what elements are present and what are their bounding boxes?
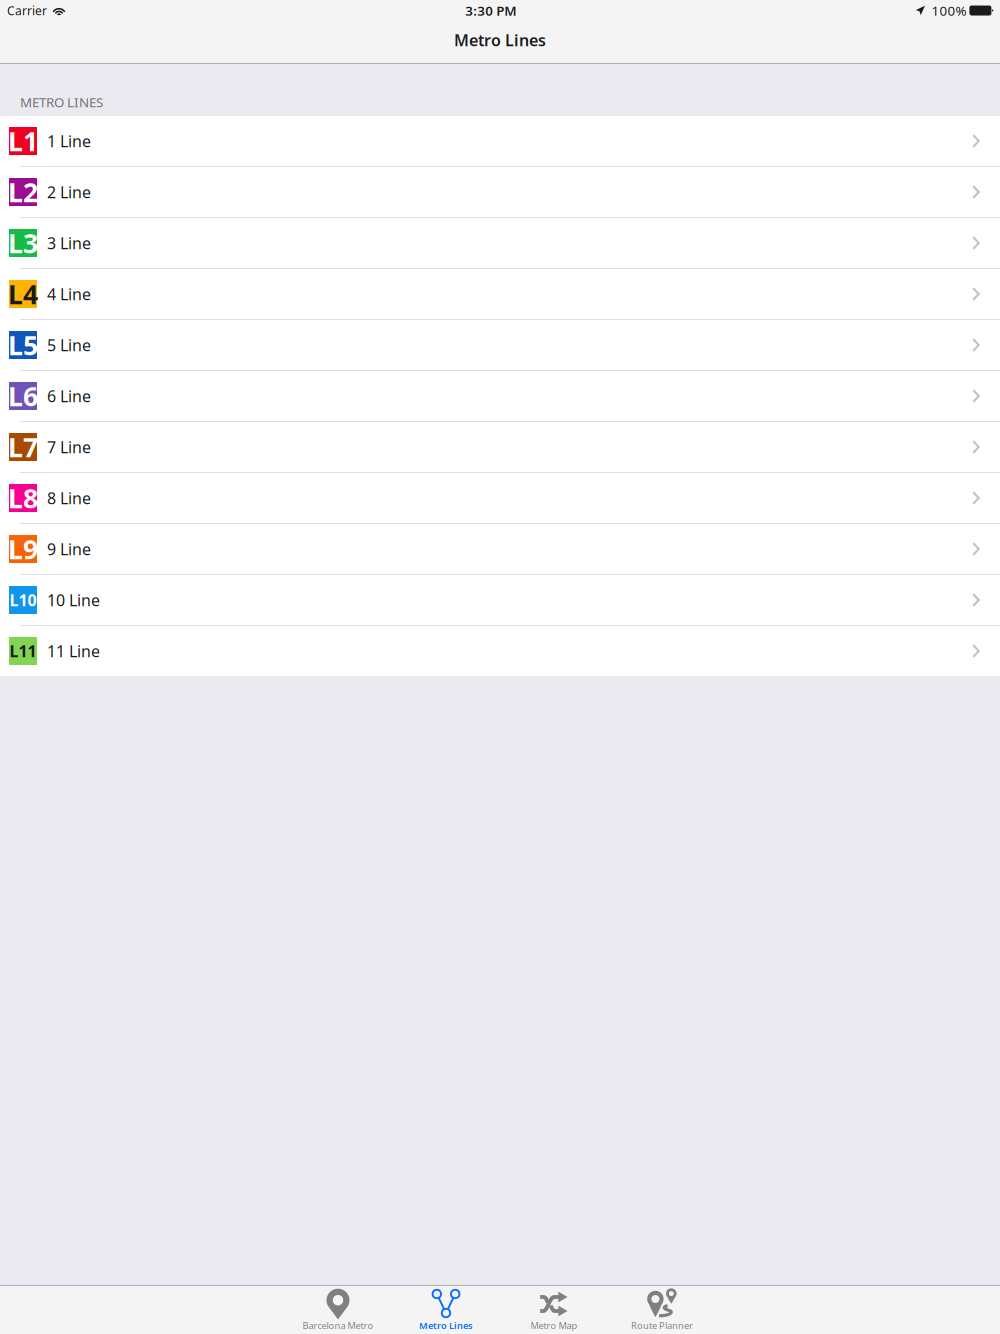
- button[interactable]: Route Planner: [608, 1285, 716, 1333]
- staticText: 100%: [931, 2, 966, 19]
- staticText: 7 Line: [47, 436, 91, 458]
- staticText: 6 Line: [47, 385, 91, 407]
- staticText: Barcelona Metro: [302, 1319, 373, 1332]
- button[interactable]: Barcelona Metro: [284, 1285, 392, 1333]
- staticText: Metro Map: [530, 1319, 577, 1332]
- staticText: L1: [8, 123, 38, 159]
- button[interactable]: Metro Lines: [392, 1285, 500, 1333]
- staticText: L5: [8, 327, 38, 363]
- staticText: Metro Lines: [454, 29, 546, 51]
- button[interactable]: L11: [0, 626, 1000, 676]
- button[interactable]: L4: [0, 269, 1000, 319]
- button[interactable]: L8: [0, 473, 1000, 523]
- staticText: 1 Line: [47, 130, 91, 152]
- button[interactable]: L9: [0, 524, 1000, 574]
- staticText: 3 Line: [47, 232, 91, 254]
- staticText: 5 Line: [47, 334, 91, 356]
- staticText: 11 Line: [47, 640, 100, 662]
- staticText: Carrier: [7, 2, 47, 18]
- staticText: L4: [8, 276, 38, 312]
- staticText: L7: [8, 429, 38, 465]
- staticText: L11: [9, 640, 36, 662]
- staticText: 2 Line: [47, 181, 91, 203]
- staticText: L9: [8, 531, 38, 567]
- staticText: 10 Line: [47, 589, 100, 611]
- staticText: L8: [8, 480, 38, 516]
- staticText: Metro Lines: [419, 1319, 473, 1332]
- staticText: 3:30 PM: [465, 2, 516, 19]
- button[interactable]: L1: [0, 116, 1000, 166]
- staticText: 4 Line: [47, 283, 91, 305]
- button[interactable]: L2: [0, 167, 1000, 217]
- staticText: L10: [9, 589, 36, 611]
- staticText: 8 Line: [47, 487, 91, 509]
- button[interactable]: L7: [0, 422, 1000, 472]
- button[interactable]: L6: [0, 371, 1000, 421]
- button[interactable]: Metro Map: [500, 1285, 608, 1333]
- button[interactable]: L3: [0, 218, 1000, 268]
- staticText: Route Planner: [631, 1319, 693, 1332]
- staticText: 9 Line: [47, 538, 91, 560]
- staticText: L6: [8, 378, 38, 414]
- staticText: METRO LINES: [20, 93, 103, 111]
- staticText: L3: [8, 225, 38, 261]
- button[interactable]: L5: [0, 320, 1000, 370]
- button[interactable]: L10: [0, 575, 1000, 625]
- staticText: L2: [8, 174, 38, 210]
